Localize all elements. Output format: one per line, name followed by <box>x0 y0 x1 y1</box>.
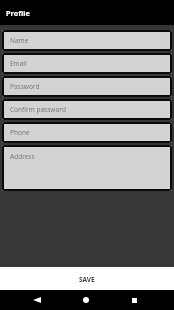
button[interactable]: Name <box>2 30 172 51</box>
button[interactable]: Recent apps <box>120 290 148 310</box>
button[interactable]: Email <box>2 53 172 74</box>
button[interactable]: Phone <box>2 122 172 143</box>
staticText: SAVE <box>79 275 95 284</box>
staticText: Profile <box>6 8 30 18</box>
button[interactable]: Password <box>2 76 172 97</box>
button[interactable]: Address <box>2 145 172 191</box>
staticText: Confirm password <box>10 105 66 114</box>
staticText: Email <box>10 59 27 68</box>
staticText: Phone <box>10 128 30 137</box>
button[interactable]: Home <box>72 290 100 310</box>
staticText: Password <box>10 82 40 91</box>
button[interactable]: Confirm password <box>2 99 172 120</box>
button[interactable]: Back <box>23 290 51 310</box>
staticText: Address <box>10 152 35 161</box>
staticText: Name <box>10 36 29 45</box>
button[interactable]: SAVE <box>0 267 174 290</box>
